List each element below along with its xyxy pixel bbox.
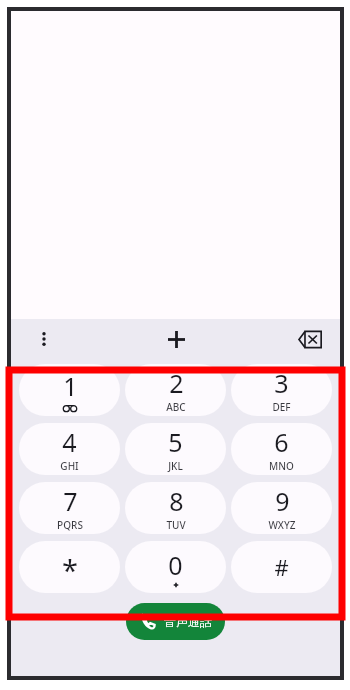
staticText: DEF	[272, 400, 291, 414]
button[interactable]: 2	[125, 364, 226, 416]
staticText: 3	[274, 366, 289, 400]
staticText: 6	[274, 425, 289, 459]
staticText: JKL	[168, 459, 183, 473]
staticText: TUV	[166, 518, 186, 532]
button[interactable]: 4	[19, 423, 120, 475]
button[interactable]: Add	[157, 320, 195, 358]
staticText: GHI	[60, 459, 79, 473]
staticText: 0	[168, 548, 183, 582]
button[interactable]: More options	[27, 322, 61, 356]
staticText: 音声通話	[164, 614, 212, 629]
staticText: 1	[63, 369, 78, 403]
button[interactable]: 9	[231, 482, 332, 534]
staticText: #	[274, 552, 289, 582]
staticText: 9	[275, 484, 290, 518]
staticText: 5	[168, 425, 183, 459]
staticText: PQRS	[57, 518, 83, 532]
staticText: MNO	[269, 459, 294, 473]
staticText: 7	[63, 484, 78, 518]
staticText: 2	[169, 366, 184, 400]
button[interactable]: 8	[125, 482, 226, 534]
staticText: ABC	[166, 400, 186, 414]
button[interactable]: 1	[19, 364, 120, 416]
button[interactable]: 5	[125, 423, 226, 475]
staticText: WXYZ	[268, 518, 296, 532]
button[interactable]: 0	[125, 541, 226, 593]
button[interactable]: *	[19, 541, 120, 593]
button[interactable]: 3	[231, 364, 332, 416]
button[interactable]: Backspace	[292, 321, 328, 357]
staticText: 4	[62, 425, 77, 459]
button[interactable]: 6	[231, 423, 332, 475]
button[interactable]: #	[231, 541, 332, 593]
button[interactable]: 音声通話	[126, 603, 225, 640]
button[interactable]: 7	[19, 482, 120, 534]
staticText: 8	[169, 484, 184, 518]
staticText: *	[62, 550, 78, 589]
